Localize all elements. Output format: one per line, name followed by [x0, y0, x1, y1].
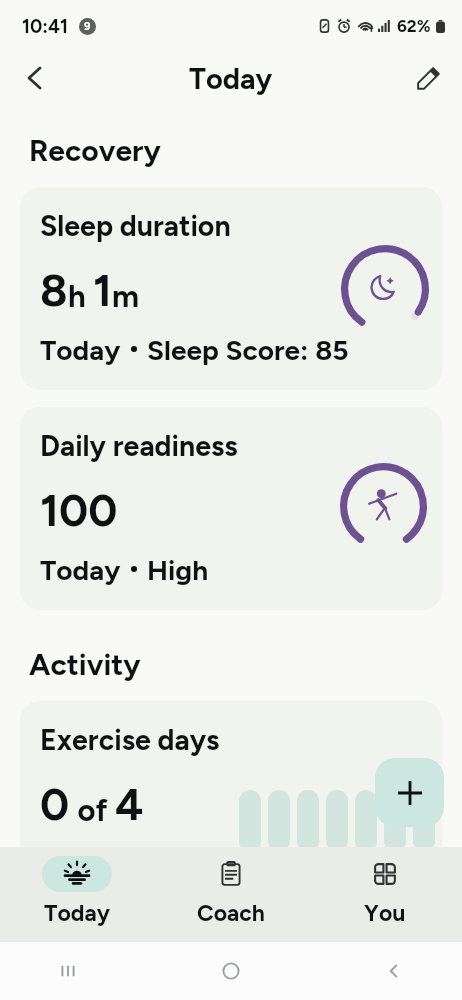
staticText: 0 — [40, 777, 70, 831]
button[interactable]: Coach — [154, 847, 308, 942]
button[interactable]: Add — [375, 758, 444, 827]
staticText: Today — [40, 553, 121, 587]
button[interactable]: You — [308, 847, 462, 942]
staticText: h — [68, 278, 86, 315]
staticText: m — [112, 278, 140, 315]
staticText: 62% — [397, 16, 431, 36]
staticText: Activity — [29, 646, 141, 682]
staticText: Exercise days — [40, 723, 220, 757]
staticText: Coach — [197, 899, 265, 927]
staticText: 100 — [40, 483, 118, 537]
staticText: 10:41 — [22, 15, 69, 38]
staticText: of — [70, 792, 115, 829]
button[interactable]: Exercise days — [20, 701, 442, 904]
staticText: 4 — [115, 777, 144, 831]
staticText: 1 — [93, 263, 112, 317]
staticText: High — [147, 553, 209, 587]
staticText: 8 — [40, 263, 68, 317]
staticText: You — [364, 899, 406, 927]
staticText: Today — [40, 333, 121, 367]
staticText: Daily readiness — [40, 429, 238, 463]
staticText: 9 — [84, 20, 91, 33]
button[interactable]: Today — [0, 847, 154, 942]
staticText: Today — [44, 899, 110, 927]
button[interactable]: Edit — [405, 55, 451, 101]
staticText: Recovery — [29, 132, 161, 168]
button[interactable]: Daily readiness — [20, 407, 442, 610]
button[interactable]: Back — [11, 55, 57, 101]
staticText: Sleep Score: 85 — [147, 333, 349, 367]
staticText: Sleep duration — [40, 209, 231, 243]
button[interactable]: Sleep duration — [20, 187, 442, 390]
staticText: Today — [189, 61, 273, 96]
